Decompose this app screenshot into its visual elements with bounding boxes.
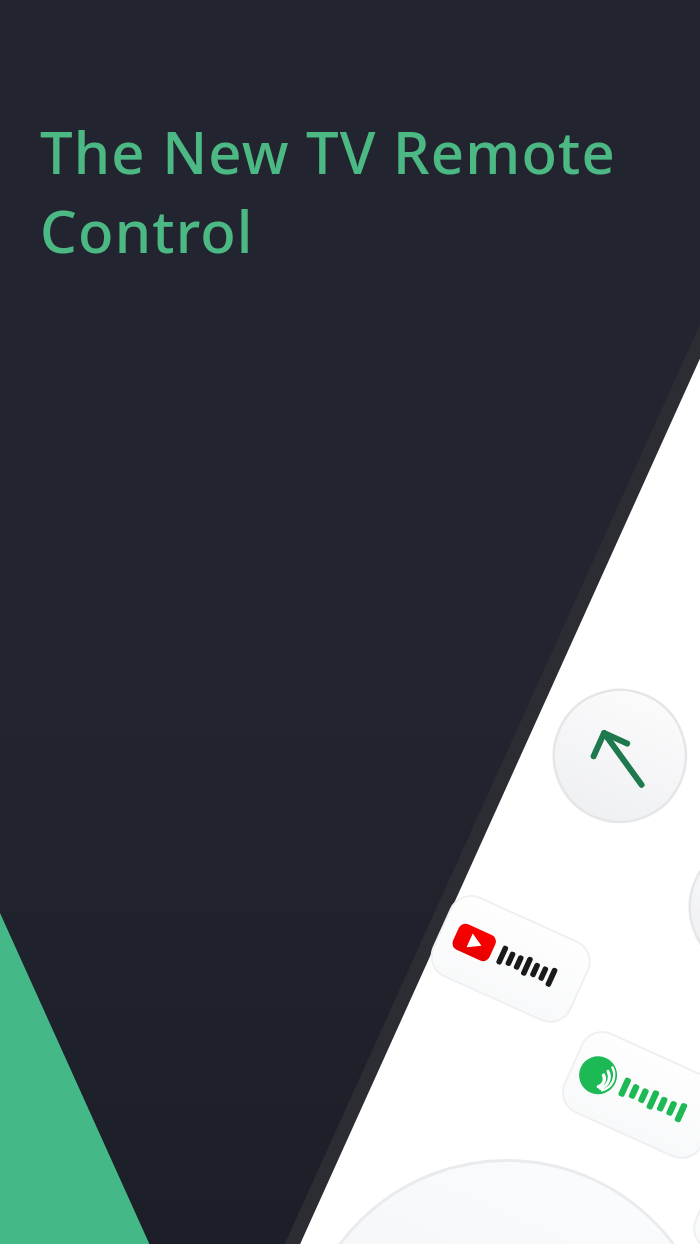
staticText: The New TV Remote: [40, 112, 616, 191]
staticText: Control: [40, 191, 254, 270]
